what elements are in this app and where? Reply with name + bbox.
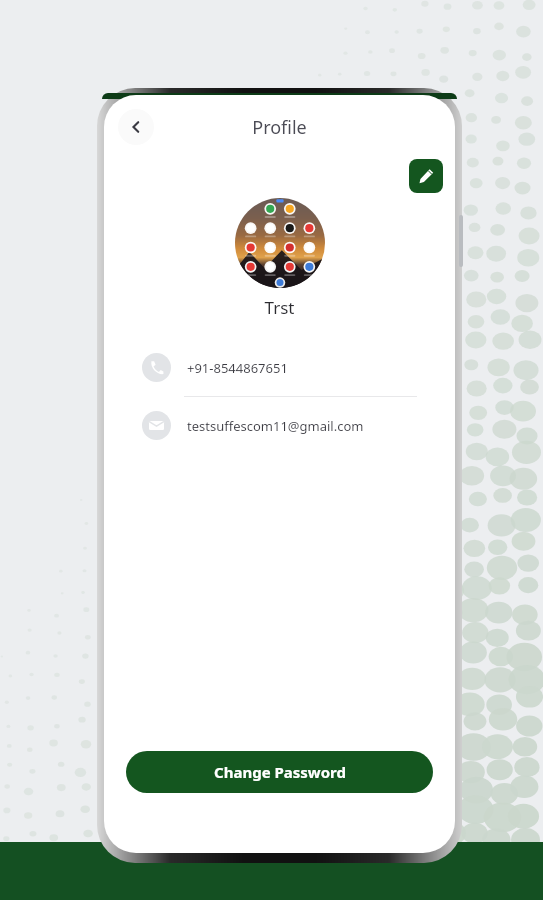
button[interactable]: Back <box>118 109 154 145</box>
button[interactable] <box>235 198 325 288</box>
staticText: Trst <box>104 296 455 319</box>
button[interactable]: +91-8544867651 <box>126 339 433 396</box>
button[interactable]: Edit profile <box>409 159 443 193</box>
staticText: +91-8544867651 <box>187 359 288 377</box>
staticText: Change Password <box>214 762 346 782</box>
button[interactable]: Change Password <box>126 751 433 793</box>
staticText: testsuffescom11@gmail.com <box>187 417 364 435</box>
button[interactable]: testsuffescom11@gmail.com <box>126 397 433 454</box>
staticText: Profile <box>252 115 307 140</box>
